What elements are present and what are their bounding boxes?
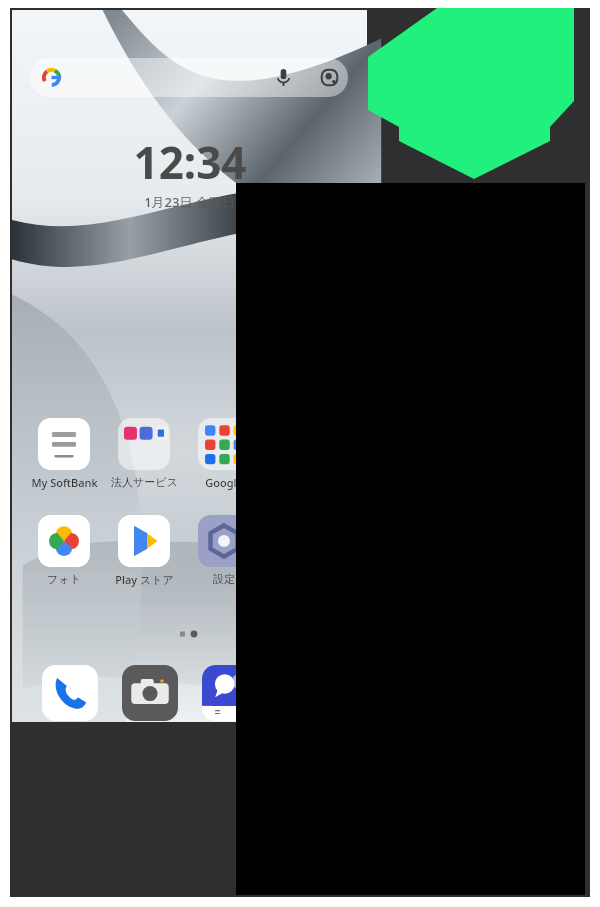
button[interactable]: My SoftBank bbox=[24, 418, 104, 490]
button[interactable]: 設定 bbox=[184, 515, 264, 586]
button[interactable]: Google Lens bbox=[319, 67, 340, 88]
staticText: 設定 bbox=[213, 572, 235, 586]
staticText: 法人サービス bbox=[111, 475, 178, 489]
button[interactable]: Voice search bbox=[273, 67, 294, 88]
staticText: Google bbox=[205, 475, 243, 490]
button[interactable]: SoftBank Messaging bbox=[202, 665, 258, 721]
button[interactable]: Play ストア bbox=[104, 515, 184, 587]
button[interactable]: 12:34 bbox=[12, 132, 367, 211]
button[interactable]: フォト bbox=[24, 515, 104, 586]
button[interactable]: 法人サービス bbox=[104, 418, 184, 489]
button[interactable]: Google bbox=[184, 418, 264, 490]
staticText: Play ストア bbox=[115, 572, 174, 587]
staticText: 1月23日 金曜日 bbox=[144, 193, 235, 211]
button[interactable]: Phone bbox=[42, 665, 98, 721]
staticText: My SoftBank bbox=[31, 475, 98, 490]
button[interactable]: Voice search bbox=[30, 58, 348, 97]
staticText: フォト bbox=[47, 572, 81, 586]
staticText: 12:34 bbox=[133, 132, 247, 192]
button[interactable]: Camera bbox=[122, 665, 178, 721]
